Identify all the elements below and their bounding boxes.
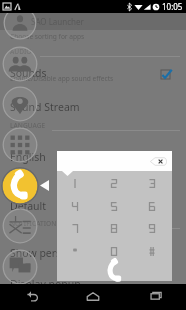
button[interactable]: 1 (61, 173, 89, 194)
button[interactable]: Map (2, 86, 38, 122)
button[interactable]: Profile (3, 6, 37, 40)
button[interactable]: 5 (100, 196, 128, 217)
button[interactable]: Call (105, 261, 125, 281)
staticText: Choose sorting for apps (10, 32, 85, 41)
staticText: AUDIO (10, 47, 32, 56)
staticText: SAO Launcher (31, 16, 84, 27)
button[interactable]: 4 (61, 196, 89, 217)
staticText: Enable/Disable app sound effects (10, 74, 114, 83)
button[interactable]: Recents (124, 284, 186, 310)
button[interactable]: Friends (2, 46, 38, 82)
button[interactable]: 6 (138, 196, 166, 217)
staticText: Show persistent notification (10, 246, 148, 260)
staticText: English (10, 150, 46, 164)
button[interactable]: 3 (138, 173, 166, 194)
button[interactable]: Backspace (150, 157, 167, 166)
button[interactable]: Apps (2, 127, 38, 163)
button[interactable]: Back (0, 284, 62, 310)
button[interactable]: 0 (100, 241, 128, 262)
staticText: NOTIFICATION (10, 219, 57, 228)
button[interactable]: Sounds toggle (160, 69, 172, 81)
button[interactable]: # (138, 241, 166, 262)
button[interactable]: * (61, 241, 89, 262)
button[interactable]: 9 (138, 218, 166, 239)
button[interactable]: Messages (2, 249, 38, 285)
button[interactable]: 2 (100, 173, 128, 194)
staticText: Display popup (10, 277, 81, 291)
staticText: Sounds (10, 66, 47, 80)
button[interactable]: Translate (2, 208, 38, 244)
button[interactable]: 7 (61, 218, 89, 239)
staticText: 10:05 (162, 1, 183, 12)
staticText: Sound Stream (10, 100, 80, 114)
staticText: LANGUAGE (10, 121, 46, 130)
button[interactable]: Phone (1, 167, 39, 205)
button[interactable]: 8 (100, 218, 128, 239)
button[interactable]: Home (62, 284, 124, 310)
staticText: Default (10, 199, 47, 213)
